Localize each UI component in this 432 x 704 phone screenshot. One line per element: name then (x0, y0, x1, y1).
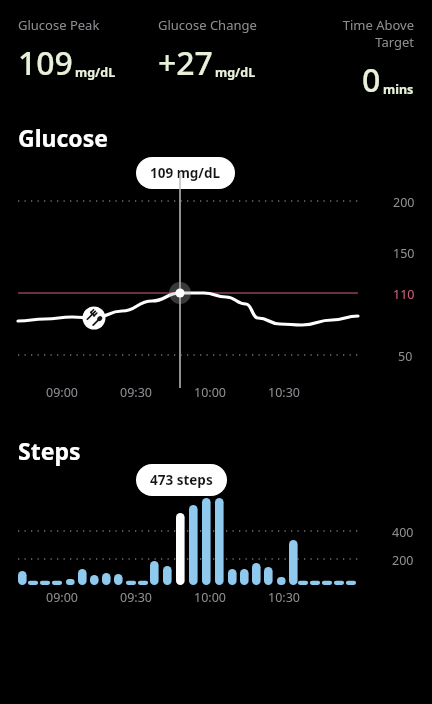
button[interactable]: Glucose chart (0, 185, 432, 375)
staticText: Time Above Target (306, 16, 414, 51)
staticText: 200 (392, 552, 414, 569)
staticText: Glucose Change (158, 16, 284, 34)
staticText: 10:30 (268, 589, 300, 606)
staticText: mg/dL (75, 64, 116, 81)
staticText: 50 (398, 348, 413, 365)
staticText: +27 (158, 41, 213, 85)
staticText: 09:00 (46, 589, 78, 606)
button[interactable]: Glucose Change (158, 16, 284, 85)
staticText: 10:00 (194, 589, 226, 606)
staticText: Glucose (18, 122, 108, 153)
staticText: mins (383, 81, 414, 98)
staticText: 09:30 (120, 589, 152, 606)
staticText: 473 steps (150, 471, 213, 489)
staticText: 10:30 (268, 384, 300, 401)
staticText: 109 (18, 41, 73, 85)
staticText: 109 mg/dL (150, 164, 221, 182)
staticText: Steps (18, 435, 81, 466)
staticText: mg/dL (215, 64, 256, 81)
staticText: 09:00 (46, 384, 78, 401)
button[interactable]: 109 mg/dL (136, 157, 235, 189)
button[interactable]: 473 steps (136, 464, 227, 496)
staticText: 0 (362, 58, 381, 102)
staticText: Glucose Peak (18, 16, 136, 34)
staticText: 10:00 (194, 384, 226, 401)
button[interactable]: Glucose Peak (18, 16, 136, 85)
staticText: 09:30 (120, 384, 152, 401)
staticText: 150 (393, 245, 415, 262)
staticText: 110 (393, 286, 415, 303)
button[interactable]: Time Above Target (306, 16, 414, 102)
button[interactable]: Steps chart (0, 465, 432, 587)
staticText: 400 (392, 524, 414, 541)
staticText: 200 (393, 194, 415, 211)
